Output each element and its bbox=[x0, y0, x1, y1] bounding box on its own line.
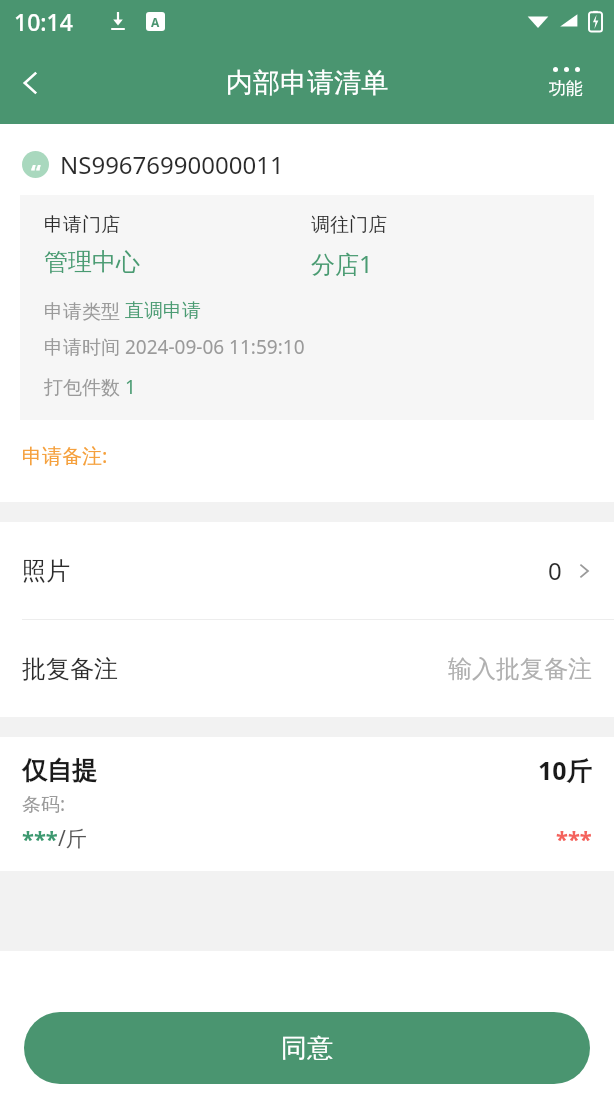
staticText: 10斤 bbox=[538, 753, 592, 787]
staticText: 内部申请清单 bbox=[226, 66, 388, 100]
staticText: 打包件数 bbox=[44, 374, 125, 400]
button[interactable]: 批复备注 bbox=[0, 620, 614, 717]
staticText: 分店1 bbox=[311, 247, 373, 280]
staticText: 批复备注 bbox=[22, 654, 118, 684]
staticText: 功能 bbox=[549, 78, 583, 99]
staticText: 管理中心 bbox=[44, 247, 140, 277]
button[interactable]: 仅自提 bbox=[0, 737, 614, 871]
staticText: 输入批复备注 bbox=[448, 654, 592, 684]
staticText: 0 bbox=[548, 554, 562, 587]
staticText: *** bbox=[556, 823, 592, 853]
staticText: 1 bbox=[125, 374, 136, 400]
staticText: 申请门店 bbox=[44, 213, 120, 237]
staticText: 仅自提 bbox=[22, 755, 97, 786]
staticText: “ bbox=[31, 156, 41, 178]
staticText: 照片 bbox=[22, 556, 70, 586]
button[interactable]: 功能 bbox=[530, 63, 602, 103]
staticText: 条码: bbox=[22, 791, 66, 817]
staticText: NS99676990000011 bbox=[60, 148, 284, 181]
staticText: /斤 bbox=[58, 824, 87, 853]
staticText: A bbox=[151, 14, 160, 30]
staticText: 直调申请 bbox=[125, 299, 201, 323]
staticText: 10:14 bbox=[14, 6, 73, 37]
staticText: 申请备注: bbox=[22, 442, 108, 469]
button[interactable]: Back bbox=[0, 52, 62, 114]
button[interactable]: 照片 bbox=[0, 522, 614, 619]
button[interactable]: 同意 bbox=[24, 1012, 590, 1084]
staticText: 申请时间 bbox=[44, 334, 125, 360]
staticText: 申请类型 bbox=[44, 298, 125, 324]
staticText: 2024-09-06 11:59:10 bbox=[125, 334, 305, 360]
staticText: *** bbox=[22, 823, 58, 853]
staticText: 调往门店 bbox=[311, 213, 387, 237]
staticText: 同意 bbox=[281, 1032, 333, 1065]
